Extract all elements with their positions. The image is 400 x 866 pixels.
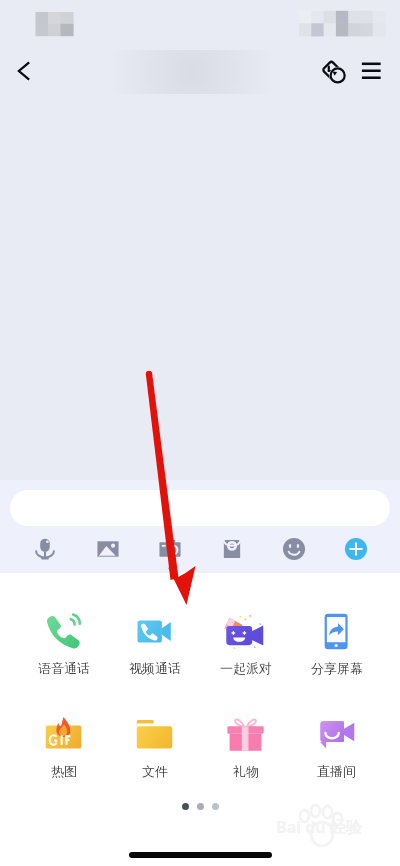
button[interactable]: Menu	[351, 50, 393, 92]
staticText: 文件	[142, 763, 168, 779]
button[interactable]: 语音通话	[18, 613, 109, 676]
button[interactable]: Camera	[139, 531, 201, 567]
staticText: 视频通话	[129, 660, 181, 676]
button[interactable]: 一起派对	[200, 613, 291, 676]
button[interactable]: Photo	[76, 531, 139, 567]
staticText: 分享屏幕	[311, 660, 363, 676]
staticText: 礼物	[233, 763, 259, 779]
button[interactable]: 文件	[109, 716, 200, 779]
button[interactable]: Group chat history	[313, 50, 355, 92]
staticText: Bai du 经验	[276, 816, 362, 838]
button[interactable]: 热图	[18, 716, 109, 779]
staticText: 语音通话	[38, 660, 90, 676]
staticText: 热图	[51, 763, 77, 779]
button[interactable]: Back	[2, 50, 44, 92]
button[interactable]: Voice message	[13, 531, 76, 567]
button[interactable]: 视频通话	[109, 613, 200, 676]
button[interactable]: 礼物	[200, 716, 291, 779]
staticText: 直播间	[317, 763, 356, 779]
button[interactable]: Emoji	[263, 531, 325, 567]
button[interactable]: More	[325, 531, 387, 567]
button[interactable]: Message input	[10, 490, 390, 526]
button[interactable]: Red packet	[201, 531, 263, 567]
button[interactable]: 直播间	[291, 716, 382, 779]
staticText: 一起派对	[220, 660, 272, 676]
button[interactable]: 分享屏幕	[291, 613, 382, 676]
